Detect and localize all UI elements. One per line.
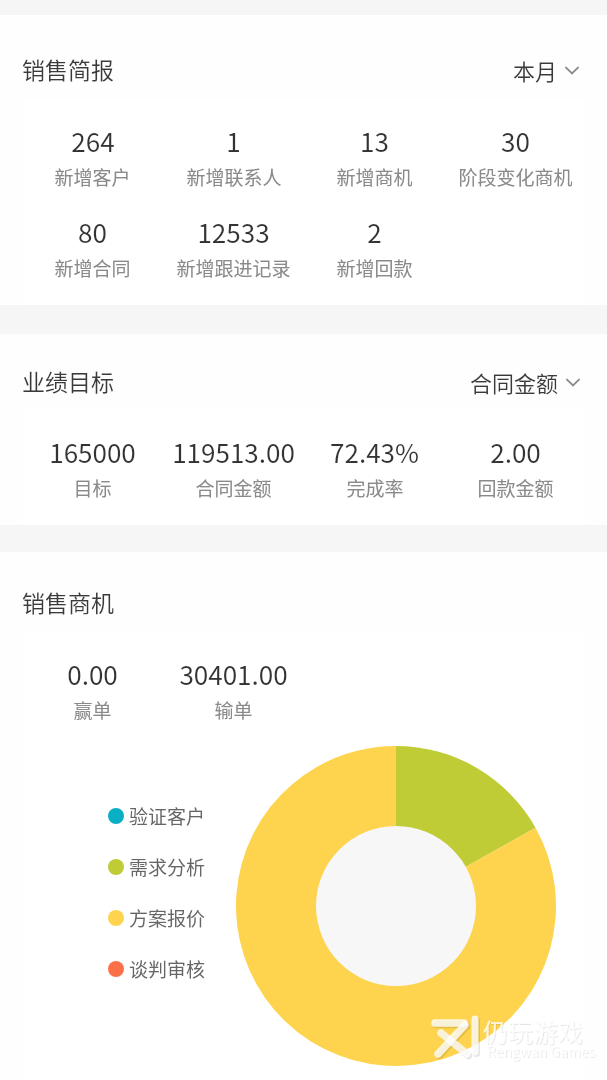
- staticText: 新增回款: [336, 254, 413, 282]
- button[interactable]: 119513.00: [163, 433, 304, 502]
- staticText: 合同金额: [195, 474, 272, 502]
- staticText: 谈判审核: [129, 955, 206, 983]
- staticText: 165000: [49, 433, 136, 471]
- staticText: 销售商机: [22, 585, 114, 618]
- staticText: 目标: [73, 474, 112, 502]
- button[interactable]: 72.43%: [304, 433, 445, 502]
- staticText: 30: [501, 122, 530, 160]
- staticText: 新增跟进记录: [176, 254, 291, 282]
- staticText: 输单: [214, 696, 253, 724]
- staticText: 2.00: [490, 433, 541, 471]
- staticText: 13: [360, 122, 389, 160]
- staticText: 本月: [513, 54, 558, 86]
- staticText: 仍玩游戏: [484, 1014, 585, 1050]
- button[interactable]: 合同金额: [470, 366, 580, 398]
- staticText: 需求分析: [129, 853, 206, 881]
- other: 展开: [566, 378, 580, 387]
- staticText: 新增联系人: [186, 163, 282, 191]
- button[interactable]: 2: [304, 213, 445, 282]
- staticText: 新增商机: [336, 163, 413, 191]
- button[interactable]: 264: [22, 122, 163, 191]
- button[interactable]: 30401.00: [163, 655, 304, 724]
- staticText: 2: [367, 213, 382, 251]
- staticText: 119513.00: [172, 433, 295, 471]
- button[interactable]: 1: [163, 122, 304, 191]
- staticText: Rengwan Games: [487, 1041, 596, 1061]
- staticText: 30401.00: [179, 655, 288, 693]
- button[interactable]: 0.00: [22, 655, 163, 724]
- other: 展开: [565, 66, 579, 75]
- button[interactable]: 验证客户: [108, 802, 206, 830]
- staticText: 264: [71, 122, 115, 160]
- staticText: 仍玩游戏: [483, 1013, 584, 1049]
- staticText: 完成率: [346, 474, 404, 502]
- staticText: Rengwan Games: [488, 1042, 597, 1062]
- staticText: 销售简报: [22, 52, 114, 85]
- staticText: 合同金额: [470, 366, 559, 398]
- staticText: 验证客户: [129, 802, 206, 830]
- staticText: 1: [226, 122, 241, 160]
- button[interactable]: 80: [22, 213, 163, 282]
- button[interactable]: 需求分析: [108, 853, 206, 881]
- staticText: 业绩目标: [22, 364, 114, 397]
- button[interactable]: 165000: [22, 433, 163, 502]
- staticText: 回款金额: [477, 474, 554, 502]
- button[interactable]: 2.00: [445, 433, 586, 502]
- staticText: 新增客户: [54, 163, 131, 191]
- staticText: 方案报价: [129, 904, 206, 932]
- button[interactable]: 谈判审核: [108, 955, 206, 983]
- button[interactable]: 方案报价: [108, 904, 206, 932]
- button[interactable]: 12533: [163, 213, 304, 282]
- staticText: 0.00: [67, 655, 118, 693]
- staticText: 阶段变化商机: [458, 163, 573, 191]
- staticText: 12533: [197, 213, 270, 251]
- staticText: 80: [78, 213, 107, 251]
- staticText: 72.43%: [330, 433, 419, 471]
- staticText: 新增合同: [54, 254, 131, 282]
- button[interactable]: 13: [304, 122, 445, 191]
- button[interactable]: 本月: [513, 54, 579, 86]
- button[interactable]: 30: [445, 122, 586, 191]
- staticText: 赢单: [73, 696, 112, 724]
